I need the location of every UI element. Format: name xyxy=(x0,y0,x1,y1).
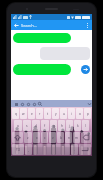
staticText: , xyxy=(28,148,29,152)
button[interactable]: c xyxy=(41,132,48,143)
button[interactable]: k xyxy=(74,120,81,131)
button[interactable]: More options xyxy=(82,20,92,30)
staticText: m xyxy=(75,136,78,140)
staticText: p xyxy=(87,112,89,116)
button[interactable]: x xyxy=(33,132,40,143)
button[interactable]: o xyxy=(76,108,83,119)
staticText: r xyxy=(39,112,41,116)
button[interactable]: p xyxy=(84,108,91,119)
staticText: t xyxy=(47,112,49,116)
button[interactable]: z xyxy=(24,132,32,143)
button[interactable]: , xyxy=(25,144,32,155)
button[interactable]: i xyxy=(68,108,75,119)
button[interactable]: q xyxy=(12,108,19,119)
button[interactable]: Back xyxy=(11,20,21,30)
button[interactable]: b xyxy=(57,132,64,143)
staticText: u xyxy=(63,112,65,116)
button[interactable] xyxy=(13,33,71,43)
staticText: c xyxy=(44,136,46,140)
staticText: a xyxy=(17,124,19,128)
button[interactable]: m xyxy=(73,132,80,143)
staticText: e xyxy=(31,112,33,116)
button[interactable] xyxy=(40,47,90,60)
button[interactable] xyxy=(13,64,71,75)
button[interactable]: Send xyxy=(81,65,90,74)
staticText: k xyxy=(77,124,79,128)
button[interactable]: r xyxy=(36,108,43,119)
button[interactable]: Backspace xyxy=(81,132,91,143)
button[interactable]: . xyxy=(71,144,78,155)
button[interactable]: e xyxy=(28,108,35,119)
button[interactable]: h xyxy=(58,120,65,131)
button[interactable]: j xyxy=(66,120,73,131)
staticText: j xyxy=(69,124,70,128)
button[interactable]: l xyxy=(82,120,89,131)
button[interactable]: Keyboard menu xyxy=(13,101,19,107)
staticText: . xyxy=(74,148,75,152)
button[interactable]: f xyxy=(41,120,49,131)
staticText: d xyxy=(35,124,37,128)
staticText: b xyxy=(60,136,62,140)
button[interactable]: Search... xyxy=(21,20,82,30)
staticText: s xyxy=(26,124,28,128)
staticText: f xyxy=(44,124,46,128)
staticText: l xyxy=(85,124,86,128)
button[interactable]: Shift xyxy=(12,132,23,143)
button[interactable]: a xyxy=(14,120,22,131)
staticText: w xyxy=(22,112,25,116)
button[interactable]: Search xyxy=(37,101,43,107)
button[interactable]: Hide keyboard xyxy=(86,101,92,107)
button[interactable]: Theme xyxy=(31,101,37,107)
button[interactable]: d xyxy=(32,120,40,131)
staticText: ?12 xyxy=(16,148,21,152)
button[interactable]: Enter xyxy=(79,144,91,155)
button[interactable]: u xyxy=(60,108,67,119)
staticText: v xyxy=(52,136,54,140)
button[interactable]: n xyxy=(65,132,72,143)
button[interactable]: y xyxy=(52,108,59,119)
button[interactable]: Emoji xyxy=(19,101,25,107)
button[interactable]: ?12 xyxy=(12,144,24,155)
staticText: q xyxy=(15,112,17,116)
staticText: Search... xyxy=(21,23,37,28)
staticText: o xyxy=(79,112,81,116)
button[interactable]: s xyxy=(23,120,31,131)
button[interactable]: Sticker xyxy=(25,101,31,107)
staticText: n xyxy=(68,136,70,140)
staticText: i xyxy=(71,112,72,116)
staticText: h xyxy=(61,124,63,128)
button[interactable] xyxy=(33,144,70,155)
button[interactable]: t xyxy=(44,108,51,119)
staticText: x xyxy=(36,136,38,140)
button[interactable]: w xyxy=(20,108,27,119)
staticText: g xyxy=(53,124,55,128)
button[interactable]: v xyxy=(49,132,56,143)
button[interactable]: g xyxy=(50,120,57,131)
staticText: z xyxy=(27,136,29,140)
staticText: y xyxy=(55,112,57,116)
